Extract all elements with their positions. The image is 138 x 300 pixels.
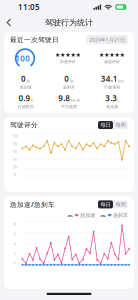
staticText: 驾驶评分 xyxy=(10,121,38,129)
staticText: km/h xyxy=(71,98,80,103)
staticText: 0.9 xyxy=(18,93,30,103)
staticText: 分 xyxy=(31,58,35,63)
staticText: 2024年1月21日 xyxy=(89,36,125,43)
staticText: 急刹车 xyxy=(63,85,75,90)
button[interactable]: 每周 xyxy=(113,121,128,129)
button[interactable]: 每日 xyxy=(98,200,113,208)
staticText: 20 xyxy=(13,164,17,169)
staticText: 0 xyxy=(21,73,26,84)
staticText: 0 xyxy=(14,172,16,177)
staticText: 驾驶行为统计 xyxy=(45,18,93,27)
staticText: 急加速 xyxy=(80,212,95,218)
staticText: 次 xyxy=(26,79,30,83)
staticText: 60 xyxy=(13,149,17,154)
staticText: 0 xyxy=(14,260,16,265)
staticText: 34.1 xyxy=(101,73,118,84)
staticText: 每日 xyxy=(100,122,110,128)
staticText: 3.3 xyxy=(105,93,117,103)
staticText: 9.8 xyxy=(58,93,70,103)
staticText: 每日 xyxy=(100,201,110,208)
staticText: 每周 xyxy=(115,201,125,208)
staticText: 平均速度 xyxy=(61,104,77,109)
staticText: 40 xyxy=(13,156,17,162)
staticText: 4 xyxy=(14,241,16,246)
staticText: 6 xyxy=(14,231,16,236)
button[interactable]: Back xyxy=(0,14,18,31)
staticText: L xyxy=(117,98,119,103)
staticText: 0 xyxy=(64,73,69,84)
staticText: 100 xyxy=(15,53,30,64)
staticText: 次 xyxy=(70,79,74,83)
staticText: 行驶里程 xyxy=(104,85,120,90)
staticText: 8 xyxy=(14,221,16,227)
staticText: 行驶时间 xyxy=(18,104,34,109)
staticText: 耗油量 xyxy=(106,104,118,109)
staticText: 急加速/急刹车 xyxy=(10,200,55,209)
staticText: 减速评价 xyxy=(104,59,120,64)
staticText: 最近一次驾驶日 xyxy=(10,36,59,44)
staticText: 每周 xyxy=(115,122,125,128)
button[interactable]: 每周 xyxy=(113,200,128,208)
staticText: h xyxy=(31,98,33,103)
staticText: 2 xyxy=(14,250,16,256)
staticText: 急加速 xyxy=(20,85,32,90)
staticText: 11:05 xyxy=(18,2,40,12)
staticText: km xyxy=(118,78,124,83)
staticText: 80 xyxy=(13,141,17,146)
staticText: 急刹车 xyxy=(113,212,128,218)
staticText: 加速评价 xyxy=(60,59,76,64)
staticText: 100 xyxy=(12,133,18,138)
button[interactable]: 每日 xyxy=(98,121,113,129)
